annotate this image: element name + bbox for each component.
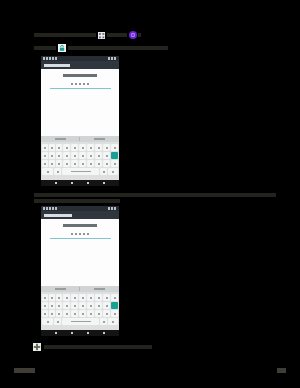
button[interactable] xyxy=(62,168,99,175)
button[interactable] xyxy=(42,160,48,167)
button[interactable] xyxy=(111,152,118,159)
button[interactable] xyxy=(56,294,62,301)
button[interactable] xyxy=(71,144,78,151)
button[interactable] xyxy=(100,318,107,325)
button[interactable] xyxy=(103,310,110,317)
button[interactable] xyxy=(95,302,102,309)
button[interactable] xyxy=(103,302,110,309)
button[interactable] xyxy=(63,310,70,317)
button[interactable] xyxy=(71,310,78,317)
button[interactable] xyxy=(41,206,119,336)
button[interactable] xyxy=(79,302,86,309)
button[interactable] xyxy=(111,310,118,317)
button[interactable] xyxy=(56,310,62,317)
button[interactable] xyxy=(71,302,78,309)
button[interactable] xyxy=(56,302,62,309)
button[interactable] xyxy=(87,294,94,301)
button[interactable] xyxy=(111,302,118,309)
button[interactable] xyxy=(103,160,110,167)
button[interactable] xyxy=(103,294,110,301)
button[interactable] xyxy=(87,310,94,317)
button[interactable] xyxy=(49,310,55,317)
button[interactable] xyxy=(56,152,62,159)
button[interactable] xyxy=(103,152,110,159)
button[interactable] xyxy=(42,152,48,159)
button[interactable] xyxy=(79,160,86,167)
other: Settings xyxy=(129,31,137,39)
button[interactable] xyxy=(103,144,110,151)
button[interactable] xyxy=(56,160,62,167)
button[interactable]: Note xyxy=(33,343,300,351)
button[interactable] xyxy=(111,294,118,301)
button[interactable] xyxy=(111,144,118,151)
button[interactable] xyxy=(95,152,102,159)
button[interactable] xyxy=(95,310,102,317)
button[interactable] xyxy=(42,168,53,175)
button[interactable] xyxy=(54,168,61,175)
button[interactable] xyxy=(54,318,61,325)
button[interactable] xyxy=(95,160,102,167)
button[interactable] xyxy=(108,168,118,175)
button[interactable] xyxy=(71,160,78,167)
button[interactable]: Apps grid xyxy=(34,31,300,39)
button[interactable] xyxy=(108,318,118,325)
button[interactable] xyxy=(87,160,94,167)
button[interactable] xyxy=(62,318,99,325)
button[interactable] xyxy=(63,144,70,151)
button[interactable] xyxy=(71,294,78,301)
button[interactable] xyxy=(49,144,55,151)
button[interactable] xyxy=(42,318,53,325)
button[interactable] xyxy=(63,302,70,309)
button[interactable] xyxy=(79,294,86,301)
button[interactable] xyxy=(87,302,94,309)
other: Security xyxy=(58,44,66,52)
other: Apps grid xyxy=(98,32,105,39)
button[interactable] xyxy=(49,152,55,159)
button[interactable] xyxy=(56,144,62,151)
button[interactable] xyxy=(79,310,86,317)
button[interactable] xyxy=(63,294,70,301)
button[interactable] xyxy=(87,144,94,151)
button[interactable] xyxy=(49,160,55,167)
button[interactable] xyxy=(34,193,300,203)
button[interactable] xyxy=(79,152,86,159)
button[interactable] xyxy=(71,152,78,159)
button[interactable] xyxy=(95,144,102,151)
button[interactable] xyxy=(42,294,48,301)
button[interactable] xyxy=(111,160,118,167)
button[interactable] xyxy=(42,144,48,151)
button[interactable] xyxy=(63,152,70,159)
other: Note xyxy=(33,343,41,351)
button[interactable] xyxy=(49,302,55,309)
button[interactable] xyxy=(95,294,102,301)
button[interactable]: Security xyxy=(34,44,300,52)
button[interactable] xyxy=(42,310,48,317)
button[interactable] xyxy=(79,144,86,151)
button[interactable] xyxy=(41,56,119,186)
button[interactable] xyxy=(49,294,55,301)
button[interactable] xyxy=(100,168,107,175)
button[interactable] xyxy=(63,160,70,167)
button[interactable] xyxy=(87,152,94,159)
button[interactable] xyxy=(42,302,48,309)
